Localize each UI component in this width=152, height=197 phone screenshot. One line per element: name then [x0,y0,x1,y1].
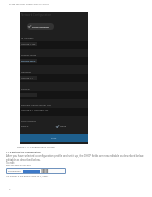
staticText: 4 [9,187,11,190]
staticText: Value [60,125,66,128]
button[interactable]: COM 3 [20,124,88,129]
staticText: DHCP Enabled [32,25,49,28]
staticText: Port Mobility [21,119,37,122]
staticText: editable as described below. [6,158,41,162]
button[interactable] [20,42,37,46]
button[interactable]: SAVE [20,134,88,142]
staticText: with the field in this box: [6,164,32,167]
staticText: 192.168.1.1 [21,77,33,80]
staticText: Gateway [21,70,32,73]
staticText: 255.255.255.0 [21,60,36,63]
button[interactable] [20,59,37,63]
staticText: Pushbutton [8,170,21,173]
staticText: P1358 dev note. Screen shot of 1/6/077 [9,3,50,6]
staticText: IP Address [21,36,34,39]
button[interactable]: DHCP Enabled [27,23,54,30]
staticText: SAVE [51,137,57,140]
button[interactable] [20,76,37,80]
staticText: 192.168.0.1 192.168.0.177 [21,109,49,112]
staticText: Subnet Mask [21,53,37,56]
staticText: Domain Name Server List [21,103,51,106]
staticText: No matter if the device adds to it, keep… [6,175,49,178]
staticText: 192.168.1.100 [21,43,36,46]
staticText: After you have selected a configuration … [6,154,144,158]
button[interactable]: Pushbutton [6,168,66,174]
staticText: Network Configuration [21,13,52,17]
staticText: 1.1.8 Editing the Configuration [6,151,41,154]
staticText: COM 3 [21,125,29,128]
staticText: To edit: [6,161,15,165]
staticText: Figure 1-2: Configuration Screen [17,145,55,148]
staticText: Particle [21,87,30,90]
